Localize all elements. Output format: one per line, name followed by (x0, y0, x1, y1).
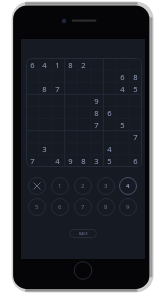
button[interactable] (64, 119, 77, 131)
button[interactable]: Erase (26, 175, 48, 197)
staticText: 4 (120, 84, 125, 94)
button[interactable]: 1 (49, 175, 71, 197)
button[interactable]: 7 (26, 155, 38, 167)
staticText: 5 (133, 84, 138, 94)
button[interactable] (129, 95, 142, 107)
button[interactable] (26, 83, 38, 95)
button[interactable]: 7 (90, 119, 103, 131)
button[interactable] (103, 83, 116, 95)
button[interactable] (77, 119, 90, 131)
button[interactable]: 5 (103, 155, 116, 167)
button[interactable] (129, 107, 142, 119)
button[interactable] (26, 131, 38, 143)
staticText: 4 (42, 60, 47, 70)
button[interactable]: 3 (90, 155, 103, 167)
staticText: 2 (81, 60, 86, 70)
button[interactable] (64, 83, 77, 95)
button[interactable]: 9 (90, 95, 103, 107)
button[interactable]: 6 (103, 107, 116, 119)
staticText: 3 (42, 144, 47, 154)
button[interactable] (26, 95, 38, 107)
button[interactable] (64, 107, 77, 119)
button[interactable]: 6 (129, 155, 142, 167)
button[interactable] (38, 119, 51, 131)
button[interactable] (77, 83, 90, 95)
button[interactable]: 6 (26, 58, 38, 71)
button[interactable]: 9 (64, 155, 77, 167)
button[interactable] (26, 71, 38, 83)
button[interactable]: 4 (116, 83, 129, 95)
button[interactable]: 9 (117, 196, 139, 218)
button[interactable]: 2 (72, 175, 94, 197)
button[interactable]: 5 (26, 196, 48, 218)
button[interactable] (64, 95, 77, 107)
button[interactable]: 4 (38, 58, 51, 71)
button[interactable] (26, 119, 38, 131)
button[interactable]: 1 (51, 58, 64, 71)
staticText: 6 (30, 60, 35, 70)
button[interactable]: 8 (129, 71, 142, 83)
button[interactable]: 6 (49, 196, 71, 218)
button[interactable]: 7 (129, 131, 142, 143)
button[interactable]: 3 (95, 175, 117, 197)
button[interactable] (103, 95, 116, 107)
button[interactable]: 8 (95, 196, 117, 218)
button[interactable]: 3 (38, 143, 51, 155)
button[interactable] (116, 58, 129, 71)
button[interactable]: 7 (72, 196, 94, 218)
button[interactable] (129, 119, 142, 131)
button[interactable]: 5 (116, 119, 129, 131)
button[interactable] (38, 155, 51, 167)
button[interactable]: 8 (90, 107, 103, 119)
button[interactable]: 8 (64, 58, 77, 71)
button[interactable] (51, 119, 64, 131)
button[interactable]: 4 (51, 155, 64, 167)
button[interactable] (26, 143, 38, 155)
button[interactable] (103, 58, 116, 71)
button[interactable] (103, 71, 116, 83)
button[interactable] (64, 71, 77, 83)
button[interactable]: 6 (116, 71, 129, 83)
button[interactable]: 8 (38, 83, 51, 95)
button[interactable]: 5 (129, 83, 142, 95)
button[interactable] (129, 58, 142, 71)
button[interactable]: 7 (51, 83, 64, 95)
button[interactable] (90, 83, 103, 95)
button[interactable] (64, 143, 77, 155)
button[interactable] (116, 155, 129, 167)
button[interactable] (64, 131, 77, 143)
button[interactable] (103, 119, 116, 131)
button[interactable]: 4 (103, 143, 116, 155)
button[interactable]: 4 (117, 175, 139, 197)
button[interactable]: 8 (77, 155, 90, 167)
button[interactable] (129, 143, 142, 155)
button[interactable] (103, 131, 116, 143)
button[interactable]: BACK (69, 229, 97, 238)
button[interactable] (26, 107, 38, 119)
button[interactable] (90, 58, 103, 71)
staticText: 3 (104, 182, 108, 190)
button[interactable]: 2 (77, 58, 90, 71)
staticText: 6 (120, 72, 125, 82)
